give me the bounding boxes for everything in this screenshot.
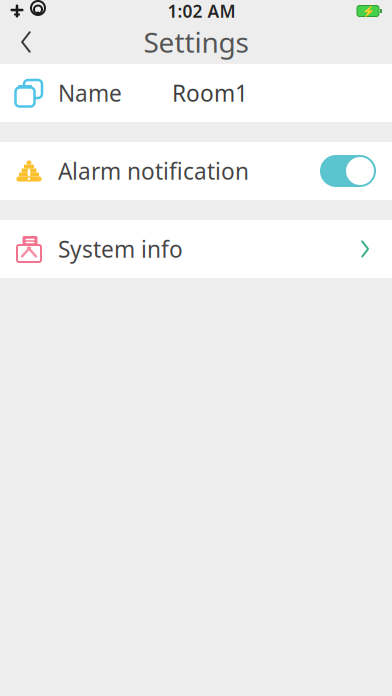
button[interactable]: Back — [0, 22, 52, 62]
button[interactable]: Name — [0, 64, 392, 122]
staticText: ⚡ — [361, 5, 374, 17]
staticText: Name — [58, 78, 122, 108]
staticText: System info — [58, 234, 183, 264]
staticText: 1:02 AM — [167, 0, 235, 22]
staticText: Settings — [143, 23, 248, 61]
button[interactable]: System info — [0, 220, 392, 278]
staticText: Alarm notification — [58, 156, 249, 186]
staticText: Room1 — [172, 78, 248, 108]
button[interactable]: Alarm notification toggle — [320, 155, 392, 187]
